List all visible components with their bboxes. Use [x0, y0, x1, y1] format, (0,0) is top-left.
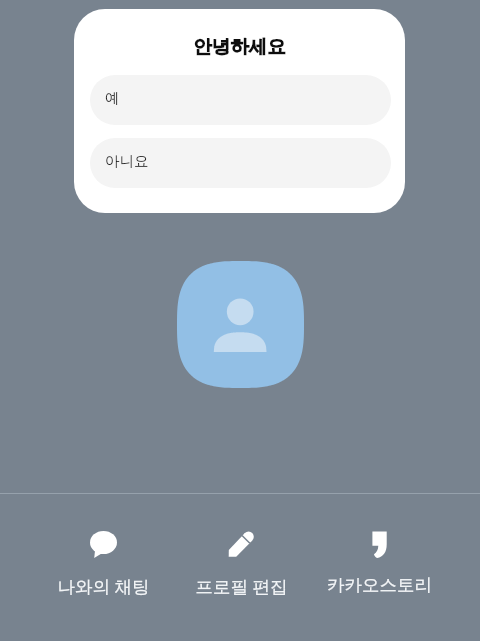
staticText: 아니요 — [105, 152, 149, 170]
button[interactable]: Chat with myself — [34, 494, 172, 641]
button[interactable]: 아니요 — [90, 138, 391, 188]
button[interactable]: KakaoStory — [310, 494, 448, 641]
staticText: 카카오스토리 — [327, 574, 432, 596]
button[interactable]: Edit profile — [172, 494, 310, 641]
staticText: 예 — [105, 89, 120, 107]
staticText: 나와의 채팅 — [57, 574, 150, 598]
staticText: 안녕하세요 — [74, 35, 405, 58]
staticText: 프로필 편집 — [195, 574, 288, 598]
button[interactable]: 예 — [90, 75, 391, 125]
